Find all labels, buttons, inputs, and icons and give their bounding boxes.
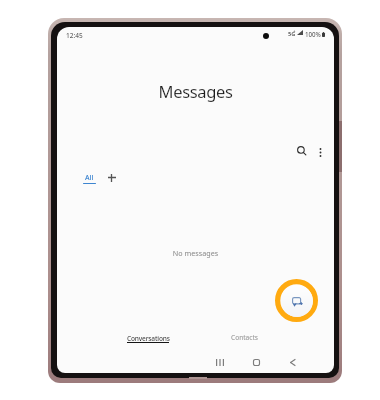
button[interactable]: Home [246, 352, 267, 373]
button[interactable]: Add category [103, 169, 120, 186]
staticText: No messages [57, 248, 334, 258]
button[interactable]: Search [294, 143, 311, 160]
staticText: Contacts [231, 333, 259, 342]
staticText: Conversations [127, 334, 170, 343]
staticText: All [85, 173, 94, 183]
button[interactable]: Start new conversation [275, 279, 318, 322]
button[interactable]: Back [282, 352, 303, 373]
staticText: + [293, 28, 296, 34]
button[interactable]: Contacts [231, 333, 259, 345]
staticText: 5G [288, 30, 296, 38]
staticText: 12:45 [66, 31, 83, 40]
button[interactable]: All [81, 173, 97, 187]
staticText: 100% [305, 30, 321, 38]
button[interactable]: More options [312, 144, 329, 161]
staticText: Messages [57, 80, 334, 102]
button[interactable]: Conversations [123, 328, 173, 348]
button[interactable]: Recent apps [209, 352, 230, 373]
